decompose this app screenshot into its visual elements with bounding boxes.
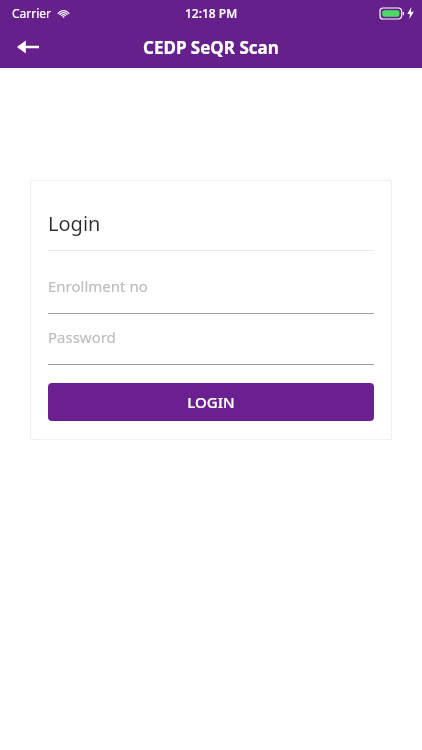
button[interactable]: LOGIN xyxy=(48,383,374,421)
staticText: Enrollment no xyxy=(48,276,148,296)
staticText: 12:18 PM xyxy=(185,5,238,21)
staticText: LOGIN xyxy=(187,392,235,412)
button[interactable]: Enrollment no xyxy=(48,271,374,314)
staticText: Carrier xyxy=(12,5,52,21)
staticText: Login xyxy=(48,210,101,237)
staticText: Password xyxy=(48,327,116,347)
button[interactable]: Password xyxy=(48,322,374,365)
staticText: CEDP SeQR Scan xyxy=(143,36,279,59)
button[interactable]: Back xyxy=(8,27,48,67)
